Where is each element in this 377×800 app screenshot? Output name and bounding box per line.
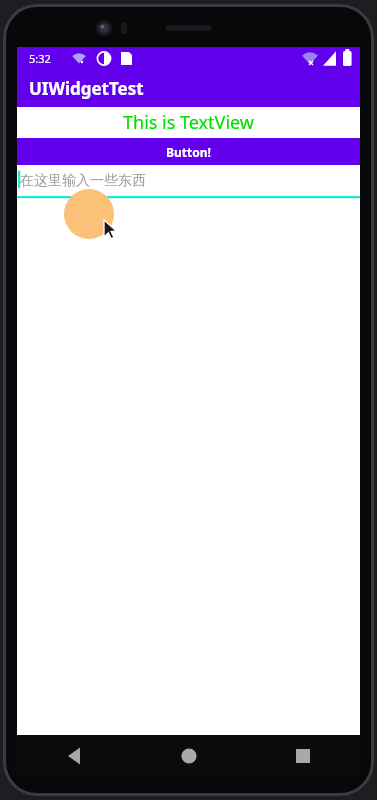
staticText: 5:32: [29, 51, 51, 66]
staticText: This is TextView: [123, 110, 254, 135]
button[interactable]: Home: [132, 735, 246, 777]
staticText: UIWidgetTest: [29, 77, 144, 100]
button[interactable]: 在这里输入一些东西: [17, 165, 360, 200]
button[interactable]: Recents: [246, 735, 360, 777]
button[interactable]: Back: [17, 735, 132, 777]
staticText: Button!: [166, 144, 211, 160]
button[interactable]: Button!: [17, 138, 360, 165]
staticText: 在这里输入一些东西: [20, 172, 146, 190]
